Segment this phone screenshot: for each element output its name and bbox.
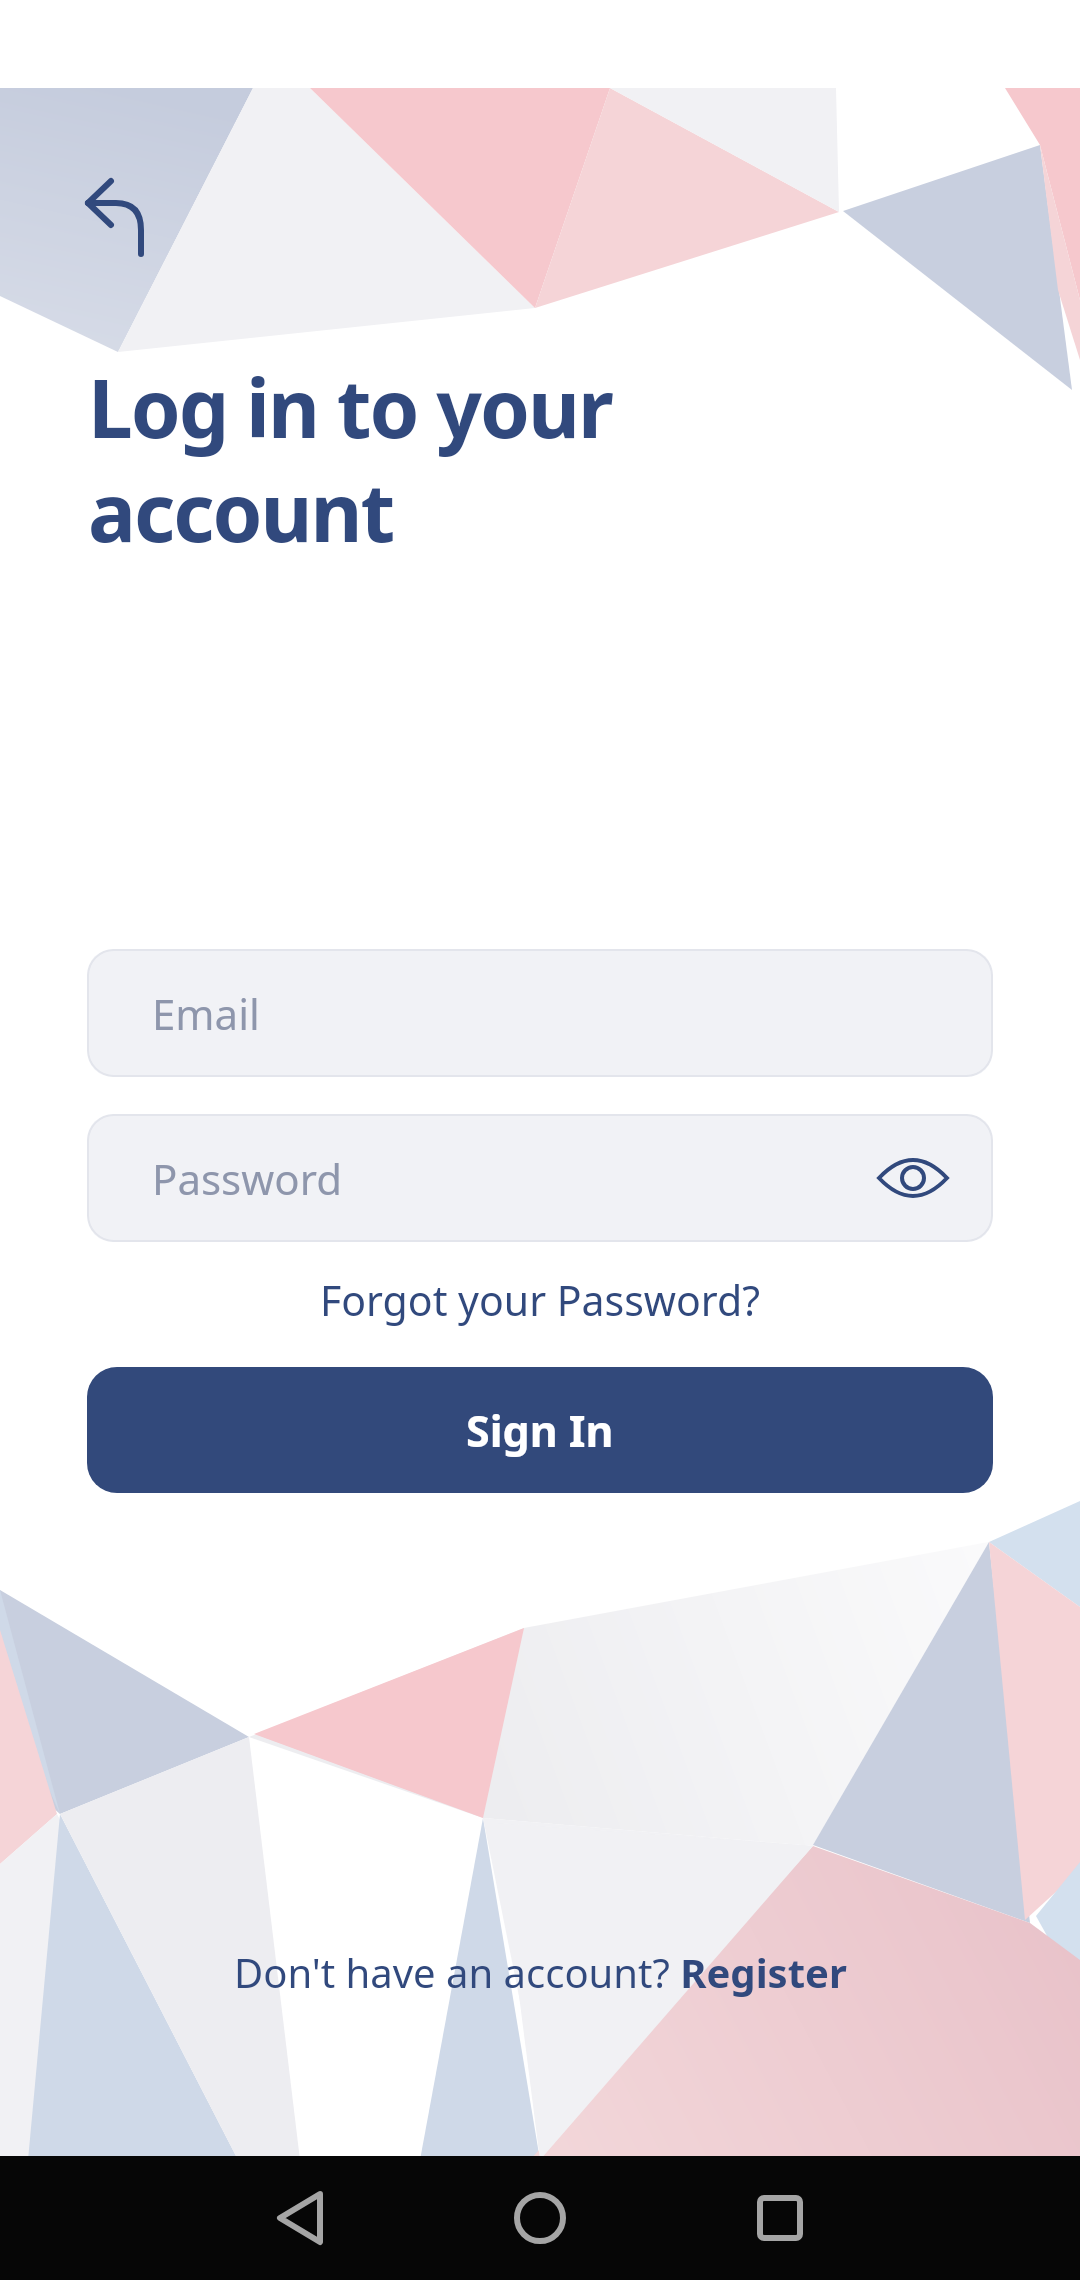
button[interactable]: Password: [87, 1114, 993, 1242]
button[interactable]: Sign In: [87, 1367, 993, 1493]
staticText: Log in to your account: [88, 352, 612, 566]
button[interactable]: [700, 2156, 860, 2280]
button[interactable]: [460, 2156, 620, 2280]
staticText: Email: [152, 985, 260, 1042]
staticText: Password: [152, 1150, 342, 1207]
button[interactable]: [873, 1138, 953, 1218]
staticText: Sign In: [466, 1401, 614, 1460]
button[interactable]: [220, 2156, 380, 2280]
button[interactable]: Forgot your Password?: [320, 1272, 760, 1328]
button[interactable]: Email: [87, 949, 993, 1077]
button[interactable]: [60, 150, 170, 260]
button[interactable]: Don't have an account? Register: [234, 1945, 847, 1999]
